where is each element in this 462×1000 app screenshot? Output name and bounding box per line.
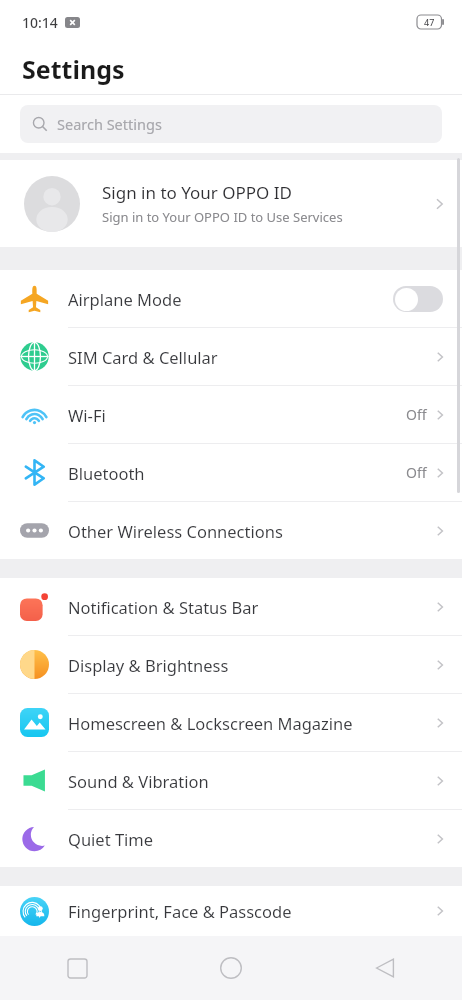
button[interactable]: Airplane Mode toggle <box>393 286 443 312</box>
staticText: Homescreen & Lockscreen Magazine <box>68 712 436 734</box>
button[interactable]: Other Wireless Connections <box>0 502 462 559</box>
staticText: Notification & Status Bar <box>68 596 436 618</box>
button[interactable]: Quiet Time <box>0 810 462 867</box>
button[interactable]: Notification & Status Bar <box>0 578 462 635</box>
button[interactable]: Back <box>308 936 462 1000</box>
staticText: Bluetooth <box>68 462 406 484</box>
staticText: Off <box>406 463 427 482</box>
staticText: 47 <box>424 16 435 28</box>
button[interactable]: Airplane Mode <box>0 270 462 327</box>
staticText: Quiet Time <box>68 828 436 850</box>
button[interactable]: Home <box>154 936 308 1000</box>
button[interactable]: Homescreen & Lockscreen Magazine <box>0 694 462 751</box>
staticText: Sign in to Your OPPO ID <box>102 181 292 204</box>
button[interactable]: Fingerprint, Face & Passcode <box>0 886 462 936</box>
button[interactable]: Recents <box>0 936 154 1000</box>
button[interactable]: Sign in to Your OPPO ID <box>0 160 462 247</box>
staticText: Off <box>406 405 427 424</box>
button[interactable]: Sound & Vibration <box>0 752 462 809</box>
staticText: Fingerprint, Face & Passcode <box>68 900 436 922</box>
staticText: Wi-Fi <box>68 404 406 426</box>
staticText: SIM Card & Cellular <box>68 346 436 368</box>
staticText: Display & Brightness <box>68 654 436 676</box>
staticText: Airplane Mode <box>68 288 393 310</box>
button[interactable]: Bluetooth <box>0 444 462 501</box>
staticText: Search Settings <box>57 114 162 134</box>
staticText: Sign in to Your OPPO ID to Use Services <box>102 208 343 226</box>
button[interactable]: Search Settings <box>20 105 442 143</box>
staticText: 10:14 <box>22 13 58 32</box>
staticText: Settings <box>22 52 125 86</box>
button[interactable]: SIM Card & Cellular <box>0 328 462 385</box>
button[interactable]: Display & Brightness <box>0 636 462 693</box>
staticText: Sound & Vibration <box>68 770 436 792</box>
button[interactable]: Wi-Fi <box>0 386 462 443</box>
staticText: Other Wireless Connections <box>68 520 436 542</box>
